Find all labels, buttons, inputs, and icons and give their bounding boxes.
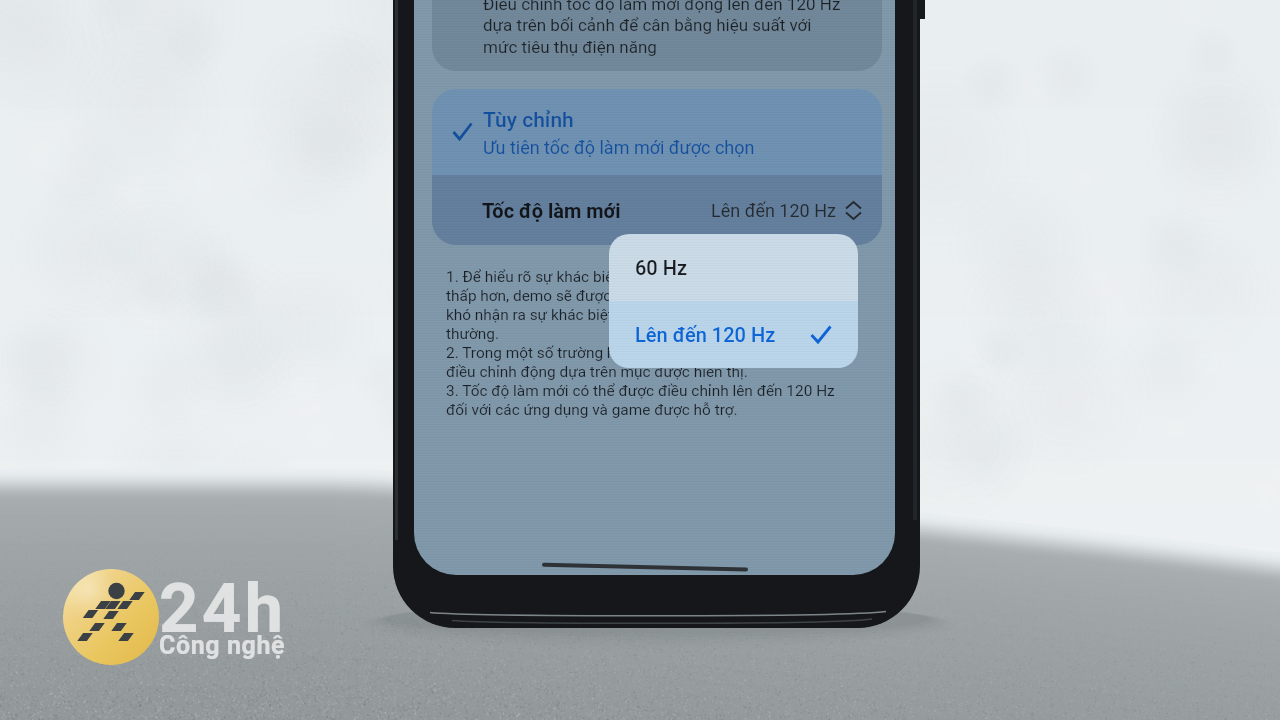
staticText: Ưu tiên tốc độ làm mới được chọn [483, 137, 755, 158]
button[interactable]: Tốc độ làm mới [432, 175, 882, 245]
staticText: Lên đến 120 Hz [711, 200, 836, 221]
staticText: Công nghệ [159, 631, 286, 660]
button[interactable]: 60 Hz [609, 234, 858, 301]
staticText: Tốc độ làm mới [482, 199, 621, 222]
button[interactable]: Tùy chỉnh [432, 89, 882, 175]
staticText: Lên đến 120 Hz [635, 323, 776, 346]
button[interactable]: Điều chỉnh tốc độ làm mới động lên đến 1… [432, 0, 882, 71]
button[interactable]: Lên đến 120 Hz [609, 301, 858, 368]
staticText: Điều chỉnh tốc độ làm mới động lên đến 1… [483, 0, 841, 57]
staticText: 24h [159, 568, 287, 649]
staticText: 60 Hz [635, 256, 688, 279]
staticText: 1. Để hiểu rõ sự khác biệt giữa tốc độ l… [446, 268, 835, 418]
staticText: Tùy chỉnh [483, 108, 574, 133]
